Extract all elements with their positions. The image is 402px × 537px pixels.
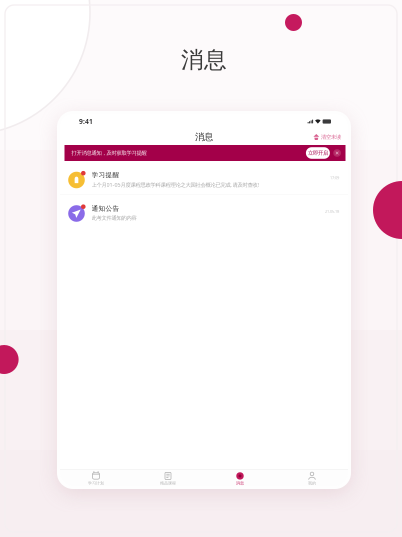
button[interactable]: 立即开启 [306, 147, 330, 159]
button[interactable]: 学习计划 [60, 469, 132, 487]
staticText: 我的 [308, 481, 316, 486]
staticText: 上个月01-05月度课程思政学科课程理论之大国社会概论已完成, 请及时查收! [91, 181, 258, 188]
staticText: 清空未读 [321, 134, 341, 140]
staticText: 学习计划 [88, 481, 104, 486]
button[interactable]: 通知公告 [60, 194, 348, 227]
staticText: 17:09 [330, 175, 339, 180]
staticText: 学习提醒 [91, 171, 119, 179]
staticText: 通知公告 [91, 204, 119, 213]
staticText: 消息 [195, 131, 213, 143]
staticText: 9:41 [79, 117, 93, 126]
staticText: 打开消息通知，及时获取学习提醒 [71, 150, 146, 156]
staticText: 消息 [236, 481, 244, 486]
button[interactable]: 精品课程 [132, 469, 204, 487]
staticText: 21-05-18 [325, 208, 339, 214]
staticText: 立即开启 [308, 150, 328, 156]
button[interactable]: 学习提醒 [60, 161, 348, 194]
staticText: 精品课程 [160, 481, 176, 486]
button[interactable]: 关闭 [330, 146, 345, 160]
button[interactable]: 清空未读 [313, 130, 348, 144]
button[interactable]: 我的 [276, 469, 348, 487]
button[interactable]: 消息 [204, 469, 276, 487]
staticText: 此考文件通知的内容 [91, 215, 136, 221]
staticText: 消息 [181, 46, 227, 74]
